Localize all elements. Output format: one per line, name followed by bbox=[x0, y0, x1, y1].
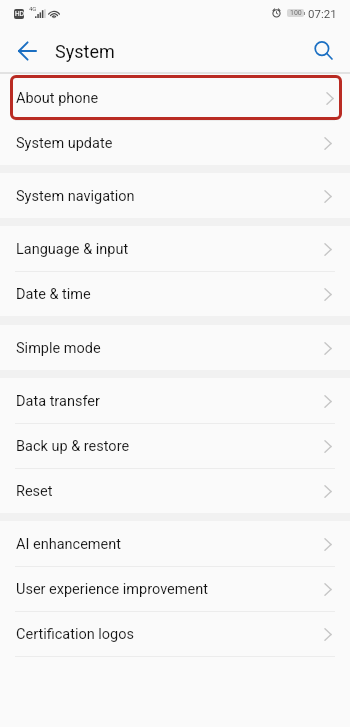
button[interactable]: Data transfer bbox=[0, 378, 350, 423]
staticText: Reset bbox=[16, 483, 53, 500]
staticText: 100 bbox=[290, 9, 302, 17]
staticText: HD bbox=[15, 10, 24, 18]
button[interactable]: Back up & restore bbox=[0, 423, 350, 468]
staticText: About phone bbox=[16, 90, 99, 107]
button[interactable]: Date & time bbox=[0, 271, 350, 316]
button[interactable]: User experience improvement bbox=[0, 566, 350, 611]
staticText: Date & time bbox=[16, 286, 91, 303]
button[interactable]: Language & input bbox=[0, 226, 350, 271]
button[interactable]: Certification logos bbox=[0, 611, 350, 656]
button[interactable]: System update bbox=[0, 120, 350, 165]
staticText: 07:21 bbox=[308, 7, 337, 20]
button[interactable]: About phone bbox=[10, 75, 342, 120]
button[interactable]: Simple mode bbox=[0, 325, 350, 370]
staticText: User experience improvement bbox=[16, 581, 208, 598]
button[interactable]: Reset bbox=[0, 468, 350, 513]
staticText: 4G bbox=[29, 5, 37, 12]
staticText: System navigation bbox=[16, 188, 135, 205]
staticText: Language & input bbox=[16, 241, 129, 258]
button[interactable]: Back bbox=[5, 29, 50, 73]
staticText: Simple mode bbox=[16, 340, 101, 357]
button[interactable]: Search bbox=[302, 29, 346, 73]
button[interactable]: AI enhancement bbox=[0, 521, 350, 566]
staticText: AI enhancement bbox=[16, 536, 122, 553]
staticText: Back up & restore bbox=[16, 438, 130, 455]
staticText: System update bbox=[16, 135, 113, 152]
button[interactable]: System navigation bbox=[0, 173, 350, 218]
staticText: Certification logos bbox=[16, 626, 135, 643]
staticText: System bbox=[55, 41, 115, 62]
staticText: Data transfer bbox=[16, 393, 100, 410]
